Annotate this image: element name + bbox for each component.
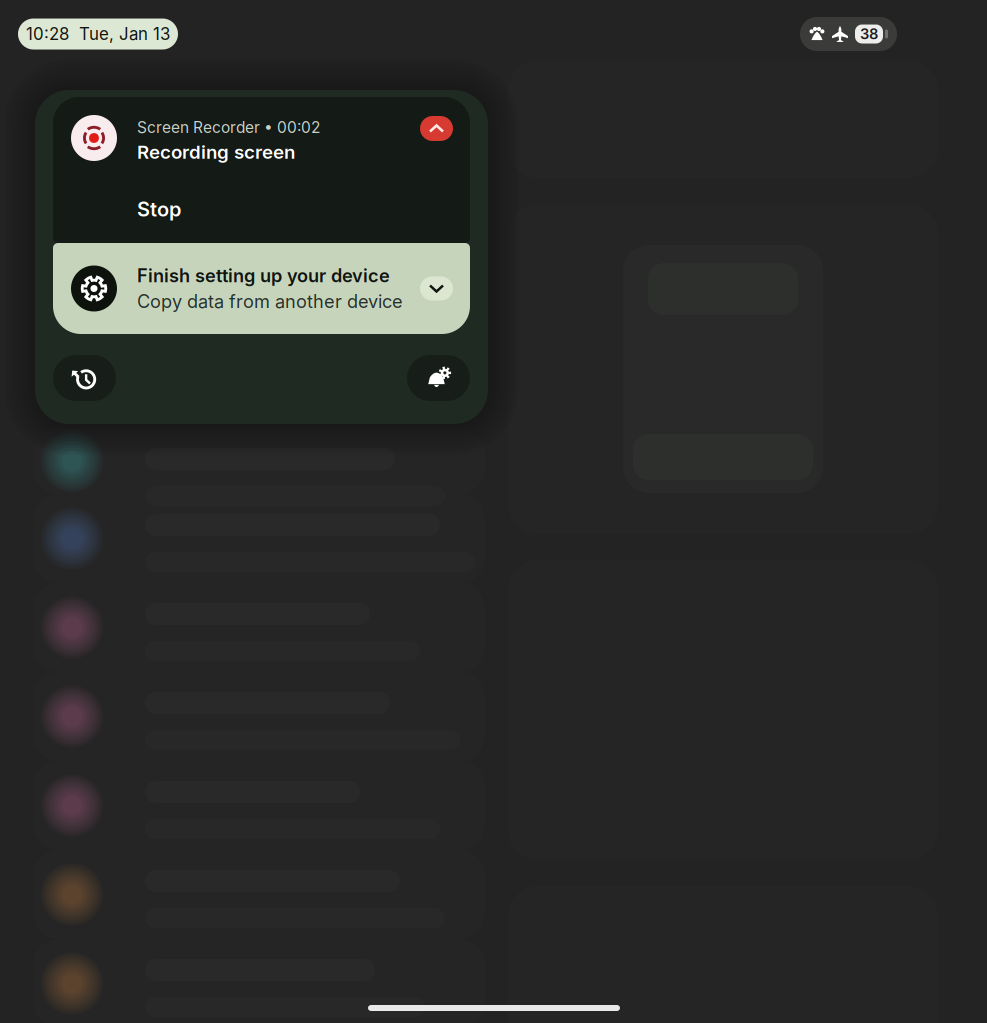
staticText: Recording screen bbox=[137, 141, 295, 163]
staticText: 10:28 Tue, Jan 13 bbox=[26, 24, 170, 44]
staticText: 38 bbox=[860, 25, 878, 43]
button[interactable]: Collapse notification bbox=[420, 115, 453, 141]
staticText: Finish setting up your device bbox=[137, 265, 390, 286]
button[interactable]: Notification history bbox=[53, 355, 116, 401]
button[interactable]: Finish setting up your device bbox=[53, 243, 470, 334]
staticText: Screen Recorder • 00:02 bbox=[137, 118, 320, 137]
staticText: Stop bbox=[137, 197, 181, 221]
button[interactable]: Notification settings bbox=[407, 355, 470, 401]
staticText: Copy data from another device bbox=[137, 290, 403, 312]
button[interactable]: Stop bbox=[53, 194, 470, 224]
